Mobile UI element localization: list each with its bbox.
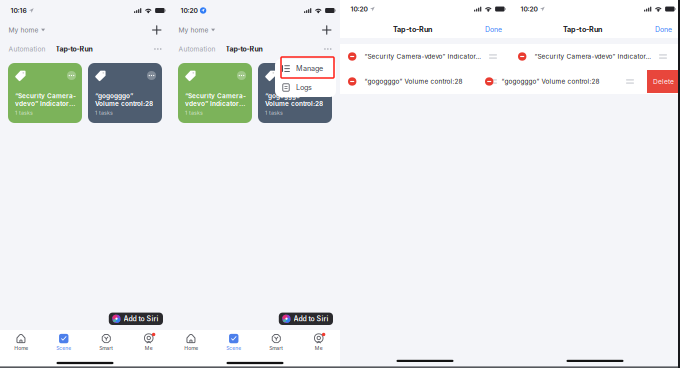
button[interactable]: Automation bbox=[170, 42, 220, 56]
staticText: My home bbox=[178, 26, 208, 34]
staticText: 10:16 bbox=[10, 6, 26, 15]
button[interactable]: Add bbox=[144, 21, 170, 39]
staticText: 1 tasks bbox=[95, 109, 113, 116]
button[interactable]: Add bbox=[314, 21, 340, 39]
button[interactable]: Smart bbox=[85, 331, 127, 354]
staticText: Home bbox=[184, 345, 198, 351]
staticText: Me bbox=[145, 345, 153, 351]
button[interactable]: Done bbox=[655, 21, 680, 38]
staticText: Add to Siri bbox=[294, 315, 329, 323]
staticText: vdevo” Indicator:… bbox=[15, 100, 76, 107]
staticText: Home bbox=[14, 345, 28, 351]
staticText: Done bbox=[655, 25, 672, 34]
button[interactable]: Done bbox=[485, 21, 510, 38]
button[interactable]: Me bbox=[297, 331, 340, 354]
staticText: Automation bbox=[178, 45, 215, 53]
button[interactable]: “Security Camera- bbox=[8, 63, 82, 123]
staticText: Tap-to-Run bbox=[225, 45, 262, 53]
button[interactable]: More options bbox=[316, 43, 340, 55]
button[interactable]: Remove bbox=[340, 77, 364, 86]
staticText: Volume control:28 bbox=[95, 100, 153, 107]
staticText: Logs bbox=[296, 83, 312, 92]
staticText: Done bbox=[485, 25, 502, 34]
button[interactable]: “Security Camera- bbox=[178, 63, 252, 123]
button[interactable]: Logs bbox=[275, 78, 336, 97]
staticText: Me bbox=[315, 345, 323, 351]
button[interactable]: “gogogggo” bbox=[258, 63, 332, 123]
button[interactable]: My home bbox=[0, 22, 51, 38]
button[interactable]: Remove bbox=[477, 77, 501, 86]
button[interactable]: Add to Siri bbox=[109, 313, 163, 325]
button[interactable]: Automation bbox=[0, 42, 50, 56]
button[interactable]: Home bbox=[170, 331, 212, 354]
button[interactable]: Tap-to-Run bbox=[50, 42, 97, 56]
button[interactable]: Add to Siri bbox=[279, 313, 333, 325]
button[interactable]: Smart bbox=[255, 331, 297, 354]
staticText: “Security Camera-vdevo” Indicator… bbox=[534, 53, 651, 60]
staticText: 1 tasks bbox=[265, 109, 283, 116]
button[interactable]: Home bbox=[0, 331, 42, 354]
staticText: “Security Camera- bbox=[15, 92, 76, 100]
staticText: “Security Camera- bbox=[185, 92, 246, 100]
staticText: vdevo” Indicator:… bbox=[185, 100, 246, 107]
staticText: Manage bbox=[296, 64, 323, 73]
staticText: “gogogggo” Volume control:28 bbox=[364, 78, 462, 85]
staticText: 1 tasks bbox=[15, 109, 33, 116]
button[interactable]: “gogogggo” bbox=[88, 63, 162, 123]
staticText: 10:20 bbox=[180, 6, 197, 15]
button[interactable]: Scene bbox=[42, 331, 85, 354]
staticText: Tap-to-Run bbox=[563, 25, 602, 34]
button[interactable]: My home bbox=[170, 22, 221, 38]
staticText: Scene bbox=[226, 345, 241, 351]
staticText: Delete bbox=[653, 77, 674, 86]
staticText: 10:20 bbox=[350, 5, 367, 13]
staticText: “gogogggo” Volume control:28 bbox=[501, 78, 599, 85]
staticText: Automation bbox=[8, 45, 45, 53]
staticText: Add to Siri bbox=[124, 315, 159, 323]
staticText: “Security Camera-vdevo” Indicator… bbox=[364, 53, 481, 60]
staticText: “gogogggo” bbox=[95, 92, 133, 100]
button[interactable]: Scene bbox=[212, 331, 255, 354]
staticText: 1 tasks bbox=[185, 109, 203, 116]
button[interactable]: Delete bbox=[647, 70, 680, 93]
button[interactable]: Remove bbox=[340, 52, 364, 61]
button[interactable]: Me bbox=[127, 331, 170, 354]
staticText: Scene bbox=[56, 345, 71, 351]
staticText: 10:20 bbox=[520, 5, 537, 13]
button[interactable]: Remove bbox=[510, 52, 534, 61]
staticText: My home bbox=[8, 26, 38, 34]
button[interactable]: More options bbox=[146, 43, 170, 55]
staticText: Smart bbox=[269, 345, 283, 351]
button[interactable]: Tap-to-Run bbox=[220, 42, 267, 56]
staticText: “gogogggo” bbox=[265, 92, 303, 100]
staticText: Smart bbox=[99, 345, 113, 351]
button[interactable]: Manage bbox=[275, 59, 336, 78]
staticText: Volume control:28 bbox=[265, 100, 323, 107]
staticText: Tap-to-Run bbox=[393, 25, 432, 34]
staticText: Tap-to-Run bbox=[55, 45, 92, 53]
